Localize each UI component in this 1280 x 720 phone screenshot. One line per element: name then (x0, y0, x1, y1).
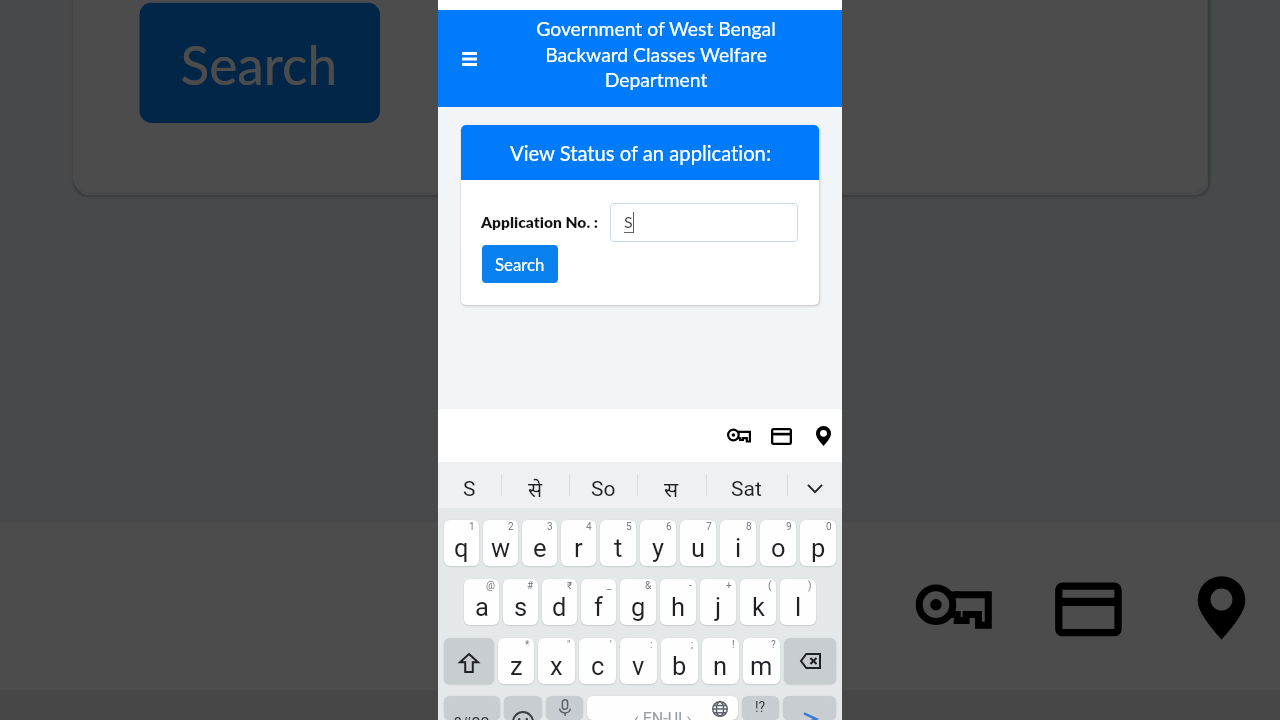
button[interactable]: Space (587, 696, 738, 720)
staticText: 6 (666, 521, 672, 533)
staticText: + (726, 580, 732, 592)
staticText: k (752, 592, 765, 622)
button[interactable]: Addresses (1153, 541, 1280, 674)
staticText: w (491, 533, 511, 563)
button[interactable]: स (637, 462, 706, 508)
button[interactable]: ? (743, 638, 780, 684)
staticText: n (713, 651, 728, 681)
button[interactable]: स (630, 690, 849, 720)
button[interactable]: Payment methods (1020, 541, 1153, 674)
button[interactable]: ) (780, 579, 816, 625)
staticText: d (552, 592, 567, 622)
button[interactable]: ! (702, 638, 739, 684)
button[interactable]: Punctuation (742, 696, 779, 720)
button[interactable]: 8 (720, 520, 756, 566)
button[interactable]: 3 (522, 520, 557, 566)
staticText: g (631, 592, 646, 622)
staticText: b (672, 651, 687, 681)
button[interactable]: ' (579, 638, 616, 684)
button[interactable]: S (438, 462, 501, 508)
button[interactable]: ( (740, 579, 776, 625)
button[interactable]: Backspace (784, 638, 836, 684)
staticText: : (650, 639, 653, 651)
staticText: Government of West Bengal Backward Class… (493, 17, 819, 91)
button[interactable]: _ (581, 579, 616, 625)
button[interactable]: Sat (706, 462, 787, 508)
staticText: s (514, 592, 528, 622)
button[interactable]: # (503, 579, 538, 625)
button[interactable]: - (660, 579, 696, 625)
button[interactable]: 6 (640, 520, 676, 566)
staticText: ?#23 (454, 714, 490, 720)
button[interactable]: Payment methods (760, 415, 802, 457)
staticText: j (715, 592, 722, 622)
staticText: Application No. : (481, 213, 598, 232)
button[interactable]: Shift (444, 638, 494, 684)
staticText: !? (755, 699, 766, 715)
staticText: Search (495, 254, 545, 274)
staticText: So (591, 477, 616, 502)
staticText: a (475, 592, 489, 622)
button[interactable]: So (415, 690, 630, 720)
staticText: & (645, 580, 652, 592)
button[interactable]: से (501, 462, 569, 508)
button[interactable]: Addresses (802, 415, 844, 457)
staticText: 1 (469, 521, 475, 533)
button[interactable]: Menu (438, 10, 493, 107)
staticText: p (811, 533, 826, 563)
button[interactable]: & (620, 579, 656, 625)
button[interactable]: Search (139, 3, 380, 123)
button[interactable]: 5 (600, 520, 636, 566)
staticText: View Status of an application: (510, 141, 771, 165)
button[interactable]: Search (482, 245, 558, 283)
button[interactable]: S (610, 203, 798, 242)
button[interactable]: Passwords (887, 541, 1020, 674)
staticText: Search (180, 31, 339, 94)
button[interactable]: + (700, 579, 736, 625)
staticText: ( (768, 580, 772, 592)
staticText: 9 (786, 521, 792, 533)
staticText: y (652, 533, 665, 563)
button[interactable]: 2 (483, 520, 518, 566)
button[interactable]: Emoji (504, 696, 542, 720)
button[interactable]: @ (464, 579, 499, 625)
staticText: z (510, 651, 523, 681)
button[interactable]: 4 (561, 520, 596, 566)
staticText: S (463, 477, 476, 502)
button[interactable]: * (498, 638, 534, 684)
staticText: # (527, 580, 534, 592)
button[interactable]: Voice input (546, 696, 583, 720)
staticText: ! (732, 639, 735, 651)
button[interactable]: Expand suggestions (787, 462, 842, 508)
staticText: f (594, 592, 603, 622)
staticText: 2 (508, 521, 514, 533)
staticText: 5 (626, 521, 632, 533)
button[interactable]: Passwords (718, 415, 760, 457)
button[interactable]: 1 (444, 520, 479, 566)
button[interactable]: " (538, 638, 575, 684)
button[interactable]: Symbols (444, 696, 500, 720)
staticText: ₹ (567, 580, 573, 592)
staticText: @ (486, 580, 495, 592)
staticText: S (624, 212, 633, 231)
staticText: e (533, 533, 547, 563)
button[interactable]: : (620, 638, 657, 684)
button[interactable]: 0 (800, 520, 836, 566)
button[interactable]: 9 (760, 520, 796, 566)
staticText: 4 (586, 521, 592, 533)
staticText: _ (607, 580, 612, 592)
button[interactable]: So (569, 462, 637, 508)
staticText: u (691, 533, 706, 563)
staticText: ; (691, 639, 694, 651)
staticText: ? (771, 639, 776, 651)
staticText: l (795, 592, 802, 622)
staticText: i (735, 533, 742, 563)
button[interactable]: ₹ (542, 579, 577, 625)
button[interactable]: ; (661, 638, 698, 684)
button[interactable]: Enter (783, 696, 836, 720)
button[interactable]: 7 (680, 520, 716, 566)
